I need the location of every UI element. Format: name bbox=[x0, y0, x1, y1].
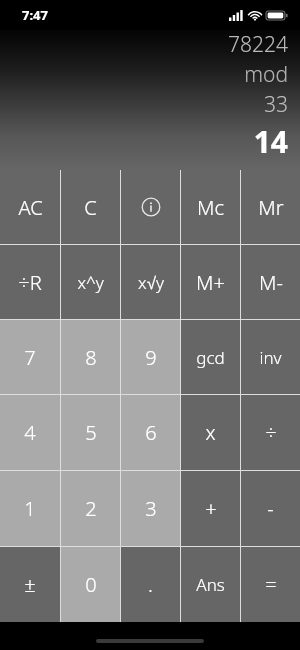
staticText: . bbox=[148, 571, 153, 598]
button[interactable]: 4 bbox=[0, 395, 60, 470]
staticText: 14 bbox=[253, 121, 288, 162]
staticText: - bbox=[267, 495, 274, 522]
button[interactable]: x bbox=[181, 395, 240, 470]
button[interactable]: . bbox=[121, 547, 180, 622]
button[interactable]: gcd bbox=[181, 320, 240, 394]
staticText: inv bbox=[259, 346, 282, 369]
staticText: 33 bbox=[264, 90, 288, 119]
button[interactable]: M- bbox=[241, 245, 300, 319]
staticText: x^y bbox=[77, 271, 104, 294]
button[interactable]: ÷R bbox=[0, 245, 60, 319]
button[interactable]: - bbox=[241, 471, 300, 546]
staticText: 5 bbox=[85, 419, 97, 446]
staticText: ± bbox=[24, 571, 36, 598]
staticText: Mr bbox=[258, 194, 284, 221]
button[interactable]: = bbox=[241, 547, 300, 622]
staticText: 1 bbox=[24, 495, 36, 522]
button[interactable]: Ans bbox=[181, 547, 240, 622]
button[interactable]: + bbox=[181, 471, 240, 546]
button[interactable]: x√y bbox=[121, 245, 180, 319]
staticText: 6 bbox=[145, 419, 157, 446]
button[interactable]: 7 bbox=[0, 320, 60, 394]
staticText: Ans bbox=[196, 573, 225, 596]
button[interactable]: 8 bbox=[61, 320, 120, 394]
staticText: C bbox=[84, 194, 97, 221]
staticText: 4 bbox=[24, 419, 36, 446]
button[interactable]: Mc bbox=[181, 170, 240, 244]
button[interactable]: Info bbox=[121, 170, 180, 244]
button[interactable]: ÷ bbox=[241, 395, 300, 470]
button[interactable]: 6 bbox=[121, 395, 180, 470]
staticText: M+ bbox=[196, 269, 225, 296]
staticText: gcd bbox=[196, 346, 225, 369]
staticText: ÷R bbox=[18, 269, 42, 296]
button[interactable]: 3 bbox=[121, 471, 180, 546]
staticText: 3 bbox=[145, 495, 157, 522]
button[interactable]: Mr bbox=[241, 170, 300, 244]
staticText: mod bbox=[244, 60, 288, 89]
staticText: 7:47 bbox=[22, 6, 48, 24]
button[interactable]: AC bbox=[0, 170, 60, 244]
button[interactable]: 2 bbox=[61, 471, 120, 546]
staticText: x bbox=[205, 419, 216, 446]
staticText: 9 bbox=[145, 344, 157, 371]
staticText: Mc bbox=[197, 194, 224, 221]
staticText: + bbox=[205, 495, 217, 522]
staticText: AC bbox=[18, 194, 43, 221]
staticText: M- bbox=[259, 269, 283, 296]
button[interactable]: 0 bbox=[61, 547, 120, 622]
button[interactable]: 9 bbox=[121, 320, 180, 394]
button[interactable]: inv bbox=[241, 320, 300, 394]
button[interactable]: M+ bbox=[181, 245, 240, 319]
staticText: 78224 bbox=[228, 30, 288, 59]
button[interactable]: x^y bbox=[61, 245, 120, 319]
button[interactable]: C bbox=[61, 170, 120, 244]
staticText: x√y bbox=[138, 271, 164, 294]
button[interactable]: ± bbox=[0, 547, 60, 622]
staticText: 7 bbox=[24, 344, 36, 371]
button[interactable]: 5 bbox=[61, 395, 120, 470]
staticText: 0 bbox=[85, 571, 97, 598]
staticText: 2 bbox=[85, 495, 97, 522]
staticText: 8 bbox=[85, 344, 97, 371]
staticText: = bbox=[265, 571, 277, 598]
staticText: ÷ bbox=[265, 419, 277, 446]
button[interactable]: 1 bbox=[0, 471, 60, 546]
